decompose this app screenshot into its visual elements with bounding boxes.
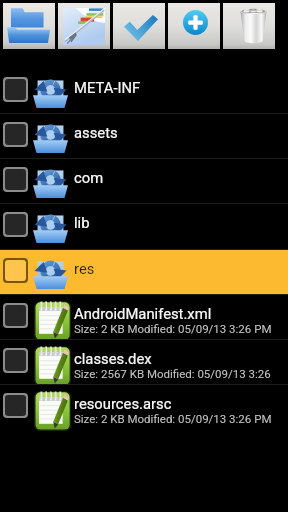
staticText: com	[74, 169, 280, 186]
button[interactable]: Select	[0, 250, 288, 294]
button[interactable]: Select all	[113, 3, 165, 49]
button[interactable]: Select	[0, 114, 288, 158]
button[interactable]: Select	[0, 204, 288, 248]
staticText: res	[74, 260, 280, 277]
button[interactable]: Select	[5, 350, 26, 371]
button[interactable]: Select	[0, 69, 288, 113]
button[interactable]: Select	[5, 305, 26, 326]
staticText: Size: 2 KB Modified: 05/09/13 3:26 PM	[74, 412, 280, 425]
button[interactable]: Select	[5, 79, 26, 100]
staticText: META-INF	[74, 79, 280, 96]
staticText: Size: 2 KB Modified: 05/09/13 3:26 PM	[74, 322, 280, 335]
button[interactable]: Select	[5, 124, 26, 145]
button[interactable]: Select	[0, 385, 288, 429]
staticText: Size: 2567 KB Modified: 05/09/13 3:26	[74, 367, 280, 380]
button[interactable]: Select	[0, 340, 288, 384]
button[interactable]: Select	[5, 395, 26, 416]
staticText: lib	[74, 214, 280, 231]
button[interactable]: Compress to zip	[58, 3, 110, 49]
button[interactable]: Select	[5, 260, 26, 281]
button[interactable]: Select	[5, 169, 26, 190]
staticText: AndroidManifest.xml	[74, 305, 280, 322]
button[interactable]: Delete	[223, 3, 275, 49]
staticText: classes.dex	[74, 350, 280, 367]
button[interactable]: Select	[0, 159, 288, 203]
button[interactable]: Select	[0, 295, 288, 339]
staticText: resources.arsc	[74, 395, 280, 412]
staticText: assets	[74, 124, 280, 141]
button[interactable]: Add	[168, 3, 220, 49]
button[interactable]: Open folder	[3, 3, 55, 49]
button[interactable]: Select	[5, 214, 26, 235]
